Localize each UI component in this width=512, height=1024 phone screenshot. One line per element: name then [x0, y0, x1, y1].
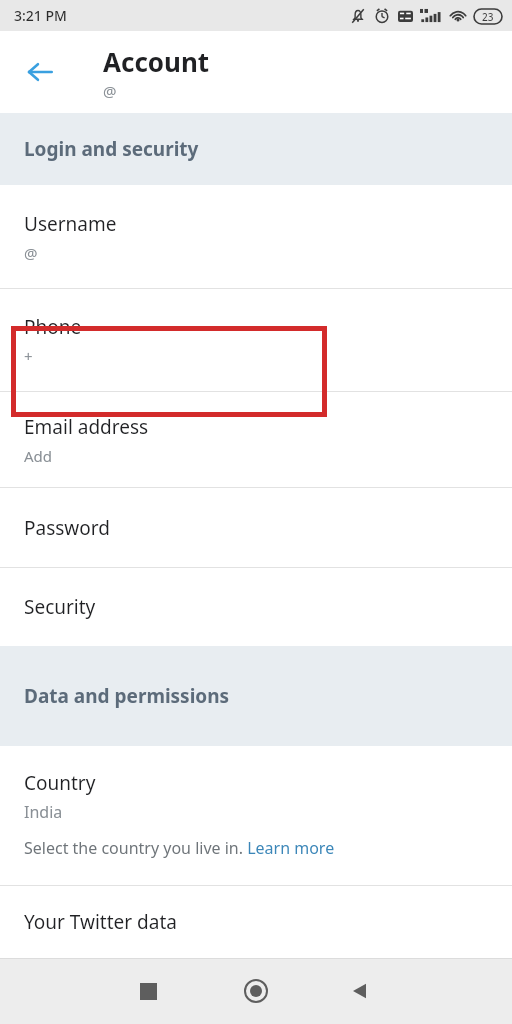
staticText: Your Twitter data — [24, 909, 177, 935]
button[interactable]: Back — [12, 44, 68, 100]
staticText: Password — [24, 515, 110, 541]
staticText: Email address — [24, 414, 149, 440]
staticText: Add — [24, 446, 53, 466]
button[interactable]: Your Twitter data — [0, 886, 512, 957]
staticText: Country — [24, 770, 96, 796]
staticText: @ — [103, 81, 117, 101]
button[interactable]: Email address — [0, 392, 512, 487]
button[interactable]: Phone — [0, 289, 512, 391]
staticText: Account — [103, 44, 210, 79]
staticText: Security — [24, 594, 96, 620]
button[interactable]: Password — [0, 488, 512, 567]
staticText: Username — [24, 211, 117, 237]
staticText: Data and permissions — [24, 683, 230, 709]
staticText: 3:21 PM — [14, 6, 67, 25]
button[interactable]: Security — [0, 568, 512, 646]
staticText: Select the country you live in. Learn mo… — [24, 837, 335, 859]
staticText: 23 — [482, 10, 494, 24]
button[interactable]: Username — [0, 185, 512, 288]
staticText: India — [24, 801, 63, 823]
staticText: @ — [24, 243, 38, 263]
button[interactable]: Home — [230, 965, 282, 1017]
staticText: Phone — [24, 314, 82, 340]
button[interactable]: Country — [0, 746, 512, 885]
staticText: Login and security — [24, 136, 199, 162]
button[interactable]: Back — [334, 965, 386, 1017]
button[interactable]: Recent apps — [122, 965, 174, 1017]
staticText: + — [24, 346, 33, 366]
